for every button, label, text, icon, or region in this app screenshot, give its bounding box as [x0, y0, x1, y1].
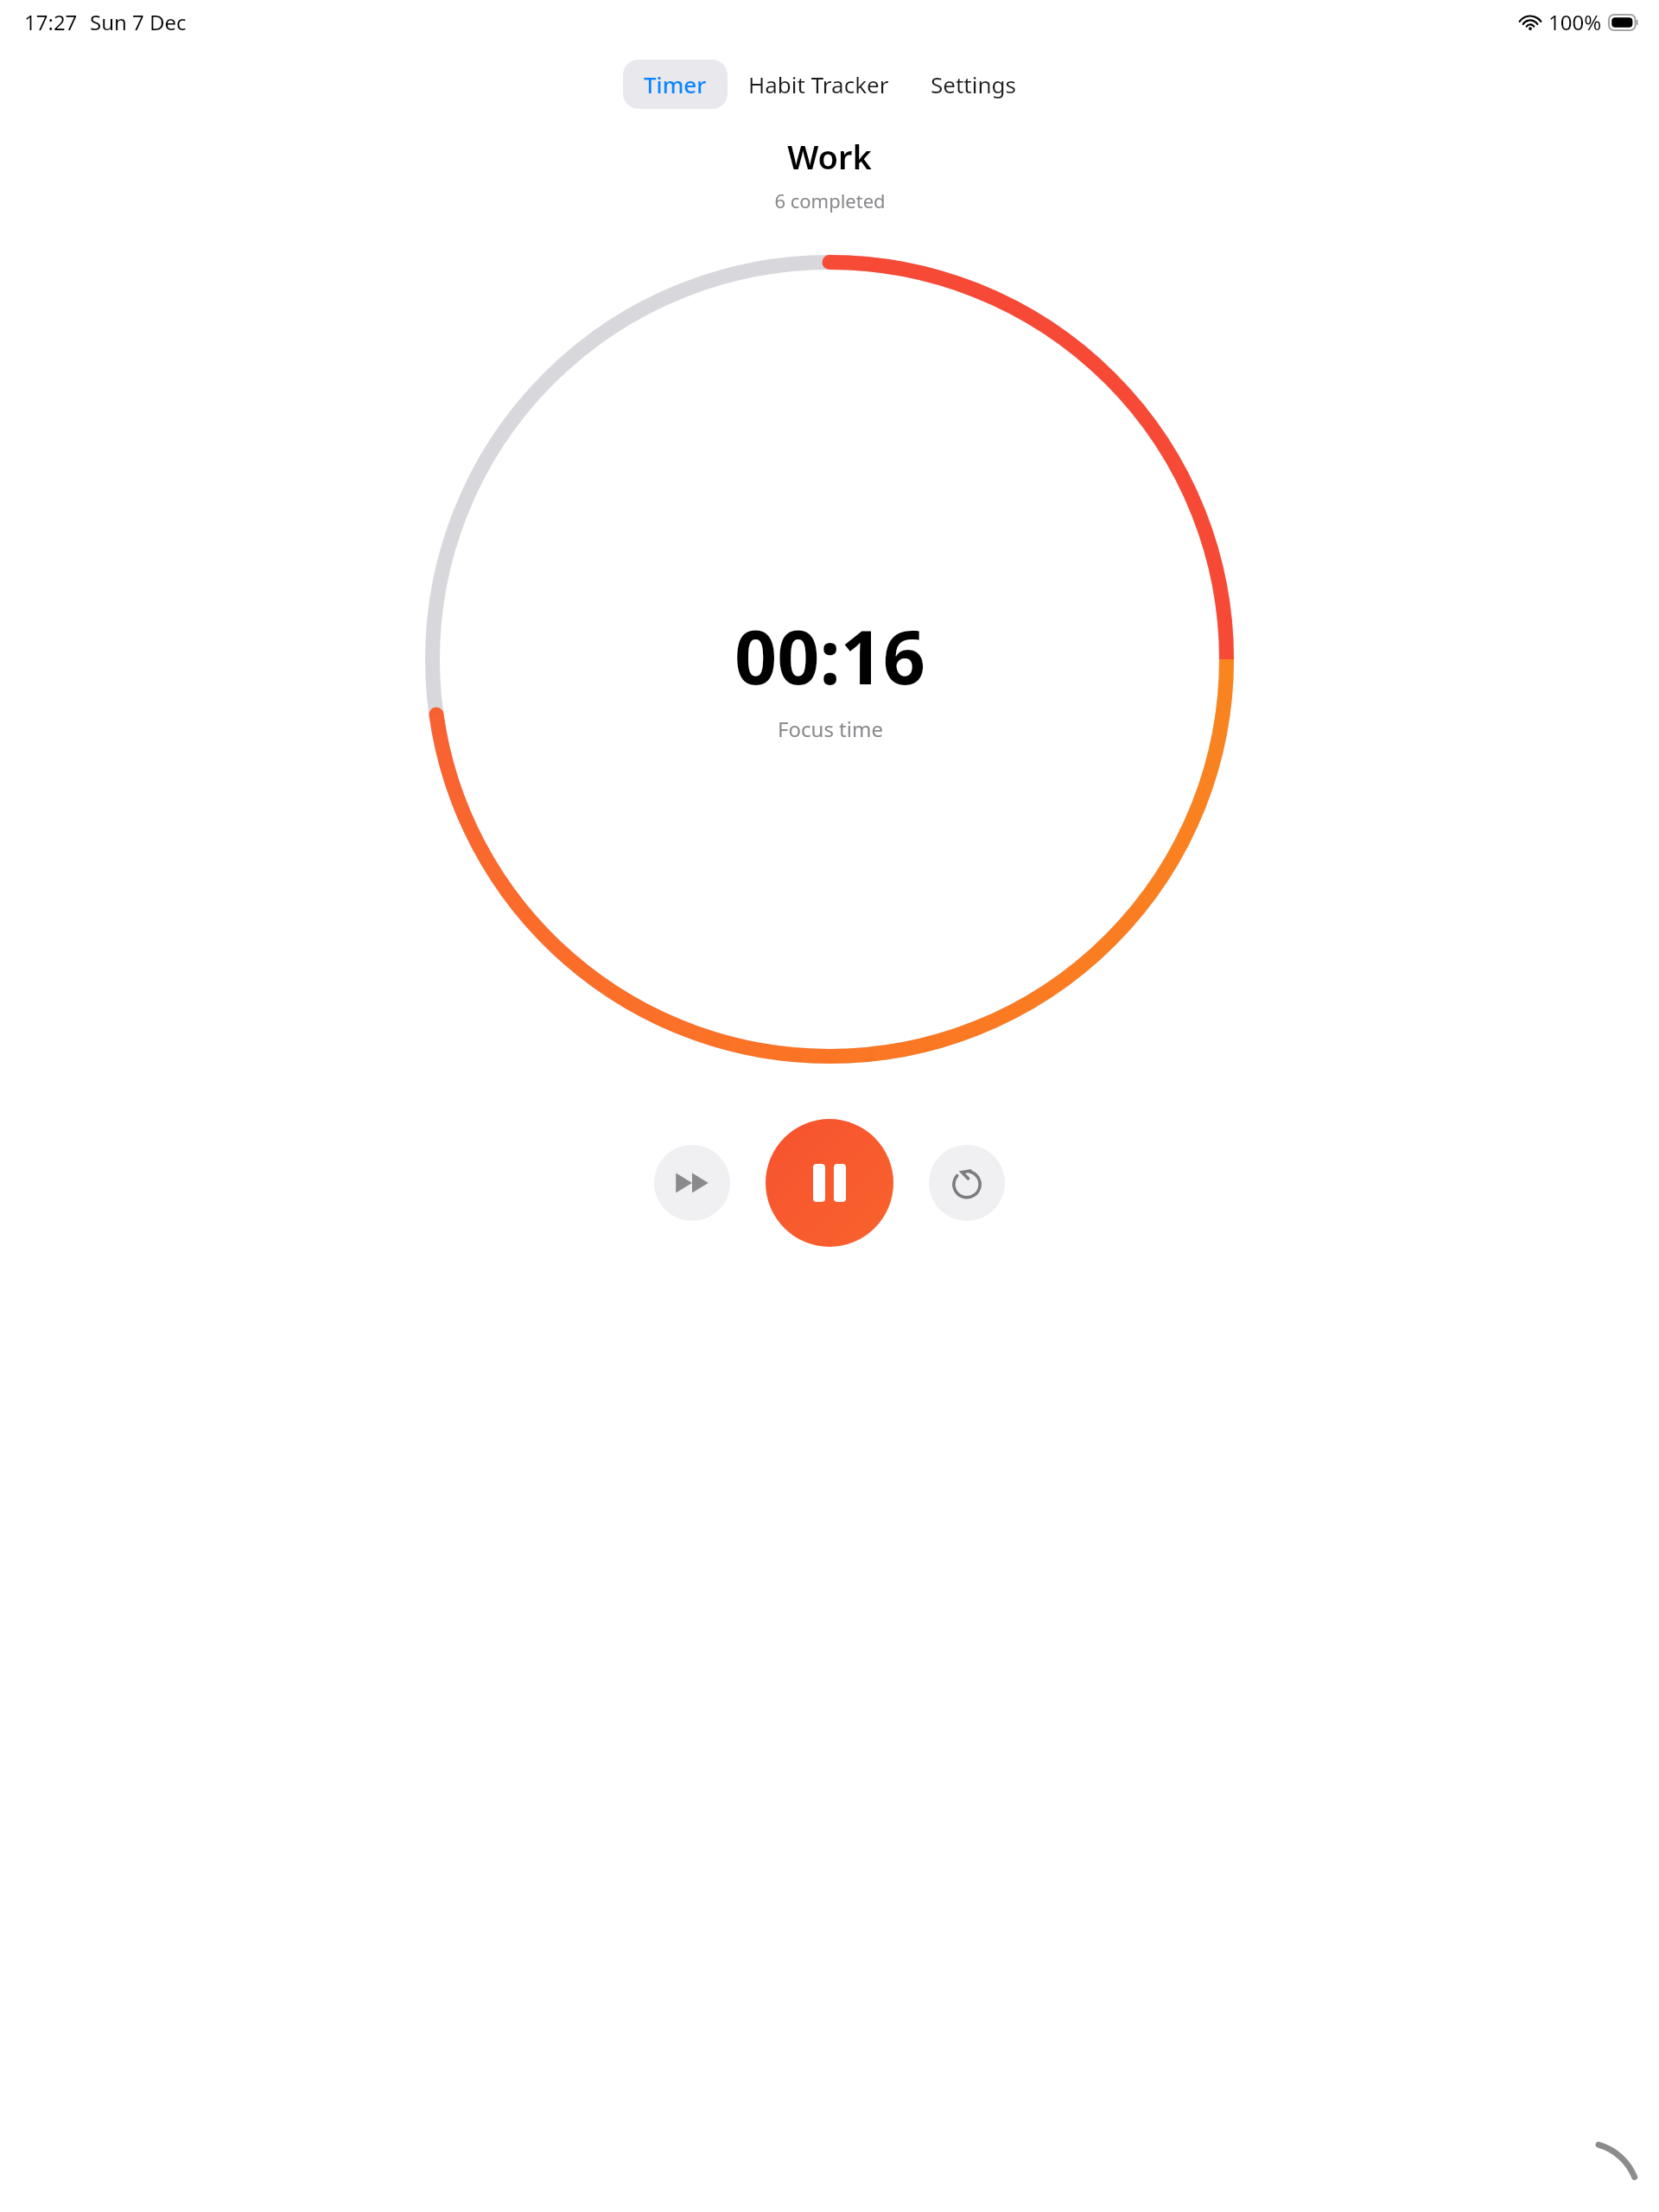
- staticText: Settings: [931, 69, 1016, 99]
- staticText: Work: [787, 134, 872, 179]
- staticText: 100%: [1548, 8, 1602, 36]
- button[interactable]: Reset: [929, 1145, 1005, 1221]
- staticText: 00:16: [734, 605, 925, 706]
- button[interactable]: Habit Tracker: [728, 60, 910, 109]
- staticText: Timer: [644, 69, 707, 99]
- button[interactable]: Pause: [766, 1119, 893, 1247]
- staticText: Habit Tracker: [748, 69, 889, 99]
- staticText: 6 completed: [774, 188, 886, 213]
- button[interactable]: Settings: [910, 60, 1037, 109]
- button[interactable]: Timer: [623, 60, 728, 109]
- button[interactable]: Skip forward: [654, 1145, 730, 1221]
- staticText: Focus time: [778, 715, 883, 743]
- staticText: Sun 7 Dec: [90, 8, 187, 36]
- staticText: 17:27: [24, 8, 78, 36]
